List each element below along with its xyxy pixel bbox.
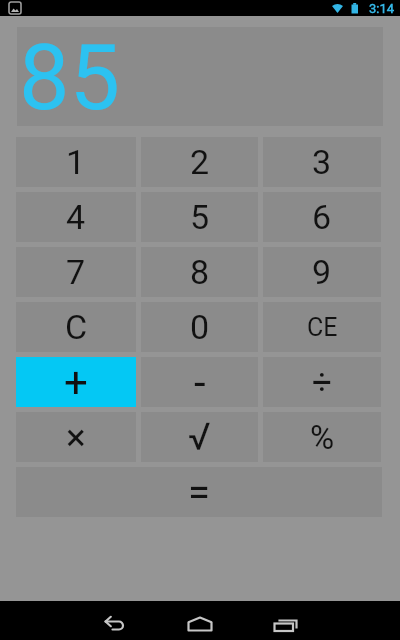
button[interactable]: 9	[263, 247, 381, 297]
staticText: 0	[190, 307, 210, 347]
button[interactable]: 1	[16, 137, 136, 187]
staticText: %	[310, 418, 335, 457]
staticText: 8	[190, 252, 210, 292]
button[interactable]: 5	[141, 192, 258, 242]
staticText: C	[65, 307, 88, 347]
button[interactable]: CE	[263, 302, 381, 352]
button[interactable]: C	[16, 302, 136, 352]
button[interactable]: %	[263, 412, 381, 462]
button[interactable]: =	[16, 467, 382, 517]
button[interactable]: ÷	[263, 357, 381, 407]
staticText: 6	[312, 197, 332, 237]
staticText: 9	[312, 252, 332, 292]
button[interactable]: +	[16, 357, 136, 407]
staticText: ×	[66, 416, 86, 459]
button[interactable]: 3	[263, 137, 381, 187]
staticText: CE	[307, 313, 338, 342]
staticText: 3	[312, 142, 332, 182]
staticText: 5	[190, 197, 210, 237]
button[interactable]	[267, 601, 400, 640]
button[interactable]: 8	[141, 247, 258, 297]
staticText: +	[64, 358, 88, 407]
button[interactable]: 4	[16, 192, 136, 242]
staticText: ÷	[312, 362, 332, 403]
button[interactable]	[0, 601, 134, 640]
button[interactable]: -	[141, 357, 258, 407]
button[interactable]: 2	[141, 137, 258, 187]
button[interactable]: √	[141, 412, 258, 462]
button[interactable]: 6	[263, 192, 381, 242]
button[interactable]	[134, 601, 267, 640]
button[interactable]: 0	[141, 302, 258, 352]
staticText: 3:14	[369, 1, 395, 16]
staticText: 2	[190, 142, 210, 182]
staticText: -	[194, 358, 206, 407]
staticText: =	[188, 469, 210, 516]
staticText: 85	[19, 26, 121, 125]
staticText: 1	[66, 142, 86, 182]
button[interactable]: 7	[16, 247, 136, 297]
staticText: 7	[66, 252, 86, 292]
staticText: √	[188, 415, 211, 460]
staticText: 4	[66, 197, 86, 237]
button[interactable]: ×	[16, 412, 136, 462]
